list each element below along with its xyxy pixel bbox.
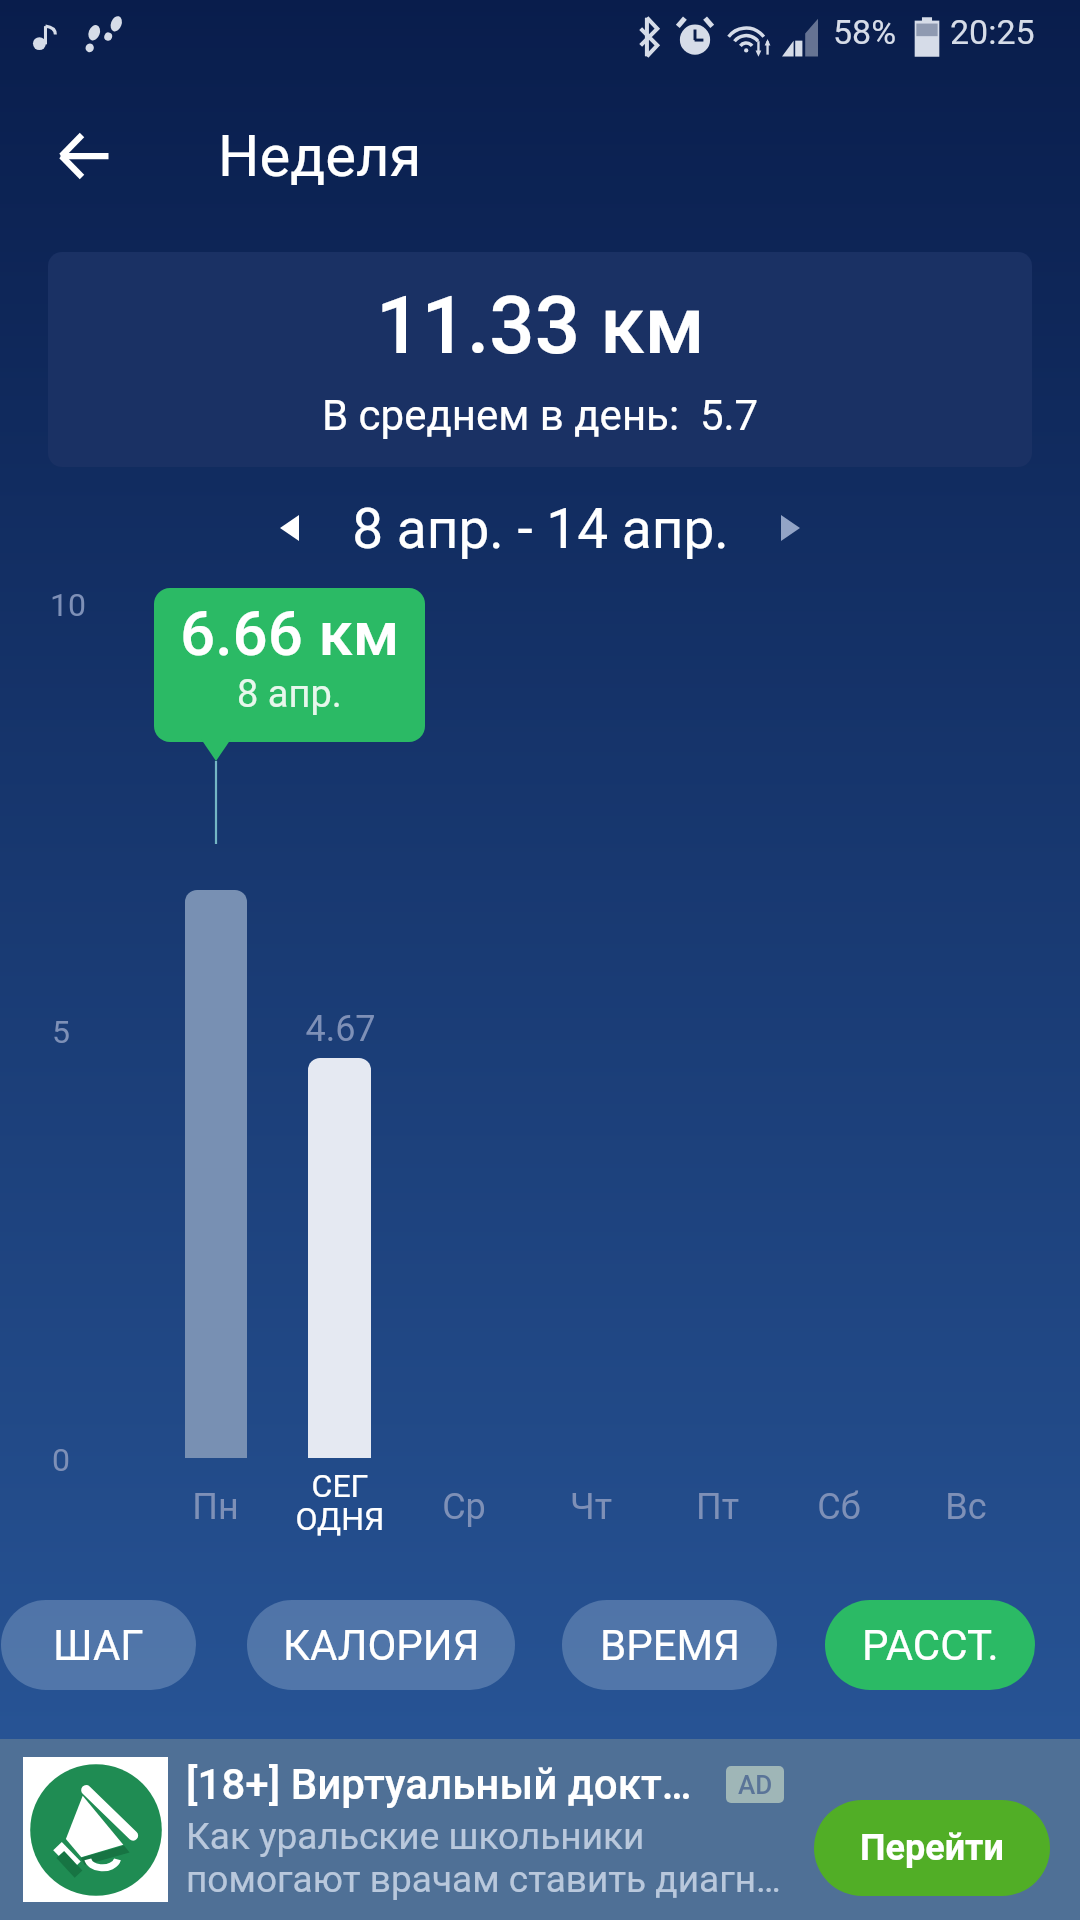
staticText: СЕГ ОДНЯ: [280, 1467, 400, 1538]
button[interactable]: [308, 1058, 371, 1458]
staticText: 20:25: [950, 12, 1035, 52]
button[interactable]: Back: [36, 108, 132, 204]
button[interactable]: Next week: [751, 494, 829, 562]
staticText: Пн: [192, 1486, 239, 1528]
staticText: Ср: [442, 1486, 486, 1528]
staticText: 8 апр.: [237, 672, 342, 717]
button[interactable]: Перейти: [814, 1800, 1050, 1896]
staticText: Сб: [817, 1486, 861, 1528]
staticText: КАЛОРИЯ: [283, 1621, 480, 1670]
staticText: Как уральские школьники помогают врачам …: [186, 1815, 781, 1901]
staticText: 11.33 км: [376, 279, 705, 373]
staticText: 58%: [833, 12, 897, 52]
button[interactable]: КАЛОРИЯ: [247, 1600, 515, 1690]
staticText: 8 апр. - 14 апр.: [352, 497, 729, 561]
staticText: 0: [52, 1441, 70, 1479]
staticText: 6.66 км: [180, 597, 400, 670]
button[interactable]: 6.66 км: [154, 588, 425, 742]
staticText: Перейти: [860, 1827, 1004, 1869]
staticText: 5: [52, 1013, 70, 1051]
staticText: ВРЕМЯ: [600, 1621, 740, 1670]
button[interactable]: Previous week: [250, 494, 328, 562]
staticText: Неделя: [218, 122, 422, 190]
staticText: Чт: [570, 1486, 612, 1528]
button[interactable]: ВРЕМЯ: [562, 1600, 777, 1690]
staticText: Вс: [945, 1486, 987, 1528]
button[interactable]: РАССТ.: [825, 1600, 1035, 1690]
staticText: В среднем в день: 5.7: [322, 391, 759, 440]
staticText: ШАГ: [53, 1621, 144, 1670]
button[interactable]: 11.33 км: [48, 252, 1032, 467]
button[interactable]: AD: [0, 1739, 1080, 1920]
staticText: 10: [50, 586, 86, 624]
button[interactable]: ШАГ: [1, 1600, 196, 1690]
button[interactable]: [185, 890, 247, 1458]
staticText: [18+] Виртуальный докт…: [186, 1760, 692, 1809]
staticText: 4.67: [305, 1008, 376, 1050]
staticText: РАССТ.: [862, 1621, 999, 1670]
staticText: AD: [738, 1770, 773, 1800]
staticText: Пт: [696, 1486, 739, 1528]
